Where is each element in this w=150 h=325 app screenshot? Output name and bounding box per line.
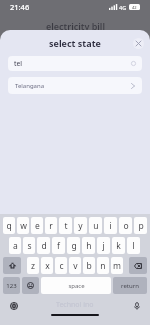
staticText: e	[35, 220, 40, 232]
button[interactable]: Telangana	[8, 77, 142, 94]
staticText: 42	[132, 5, 137, 10]
staticText: k	[116, 240, 121, 252]
button[interactable]: y	[74, 217, 87, 234]
staticText: select state	[49, 37, 101, 49]
staticText: u	[93, 220, 99, 232]
button[interactable]: k	[112, 237, 125, 254]
button[interactable]: h	[82, 237, 95, 254]
staticText: w	[20, 220, 27, 232]
button[interactable]: b	[83, 257, 95, 274]
staticText: n	[100, 260, 106, 272]
button[interactable]: 123	[3, 277, 20, 294]
staticText: space	[68, 282, 85, 290]
button[interactable]: v	[69, 257, 81, 274]
button[interactable]: c	[55, 257, 67, 274]
button[interactable]: f	[52, 237, 65, 254]
staticText: c	[59, 260, 64, 272]
button[interactable]: Change keyboard	[8, 300, 19, 311]
button[interactable]: o	[119, 217, 132, 234]
button[interactable]: n	[97, 257, 109, 274]
button[interactable]: Shift	[3, 257, 21, 274]
button[interactable]: q	[3, 217, 15, 234]
button[interactable]: space	[41, 277, 111, 294]
staticText: r	[49, 220, 53, 232]
staticText: j	[102, 240, 105, 252]
button[interactable]: s	[23, 237, 35, 254]
staticText: g	[71, 240, 77, 252]
staticText: x	[45, 260, 50, 272]
button[interactable]: Backspace	[129, 257, 147, 274]
button[interactable]: l	[127, 237, 140, 254]
button[interactable]: m	[111, 257, 123, 274]
staticText: d	[41, 240, 47, 252]
staticText: f	[57, 240, 60, 252]
staticText: m	[113, 260, 121, 272]
button[interactable]: g	[67, 237, 80, 254]
button[interactable]: z	[27, 257, 39, 274]
button[interactable]: Emoji	[22, 277, 39, 294]
staticText: o	[123, 220, 129, 232]
staticText: return	[121, 282, 139, 290]
staticText: b	[86, 260, 92, 272]
staticText: t	[64, 220, 68, 232]
staticText: a	[13, 240, 18, 252]
staticText: i	[109, 220, 112, 232]
staticText: p	[138, 220, 144, 232]
button[interactable]: Dictate	[131, 300, 142, 311]
button[interactable]: tel	[8, 56, 142, 71]
button[interactable]: u	[89, 217, 102, 234]
staticText: electricity bill	[46, 20, 105, 32]
button[interactable]: return	[113, 277, 147, 294]
staticText: Technol ino	[56, 300, 94, 310]
button[interactable]: e	[31, 217, 43, 234]
staticText: l	[132, 240, 135, 252]
staticText: s	[27, 240, 32, 252]
staticText: 123	[6, 282, 17, 290]
staticText: z	[31, 260, 35, 272]
button[interactable]: i	[104, 217, 117, 234]
button[interactable]: a	[9, 237, 21, 254]
staticText: q	[6, 220, 12, 232]
staticText: Telangana	[15, 82, 45, 90]
button[interactable]: x	[41, 257, 53, 274]
button[interactable]: j	[97, 237, 110, 254]
staticText: 21:46	[10, 2, 30, 12]
staticText: v	[73, 260, 78, 272]
staticText: 4G	[119, 4, 127, 11]
staticText: y	[78, 220, 83, 232]
button[interactable]: p	[134, 217, 147, 234]
button[interactable]: t	[59, 217, 72, 234]
button[interactable]: Close	[133, 38, 144, 49]
button[interactable]: w	[17, 217, 29, 234]
staticText: h	[86, 240, 92, 252]
button[interactable]: d	[37, 237, 50, 254]
staticText: tel	[14, 59, 22, 68]
button[interactable]: r	[45, 217, 57, 234]
